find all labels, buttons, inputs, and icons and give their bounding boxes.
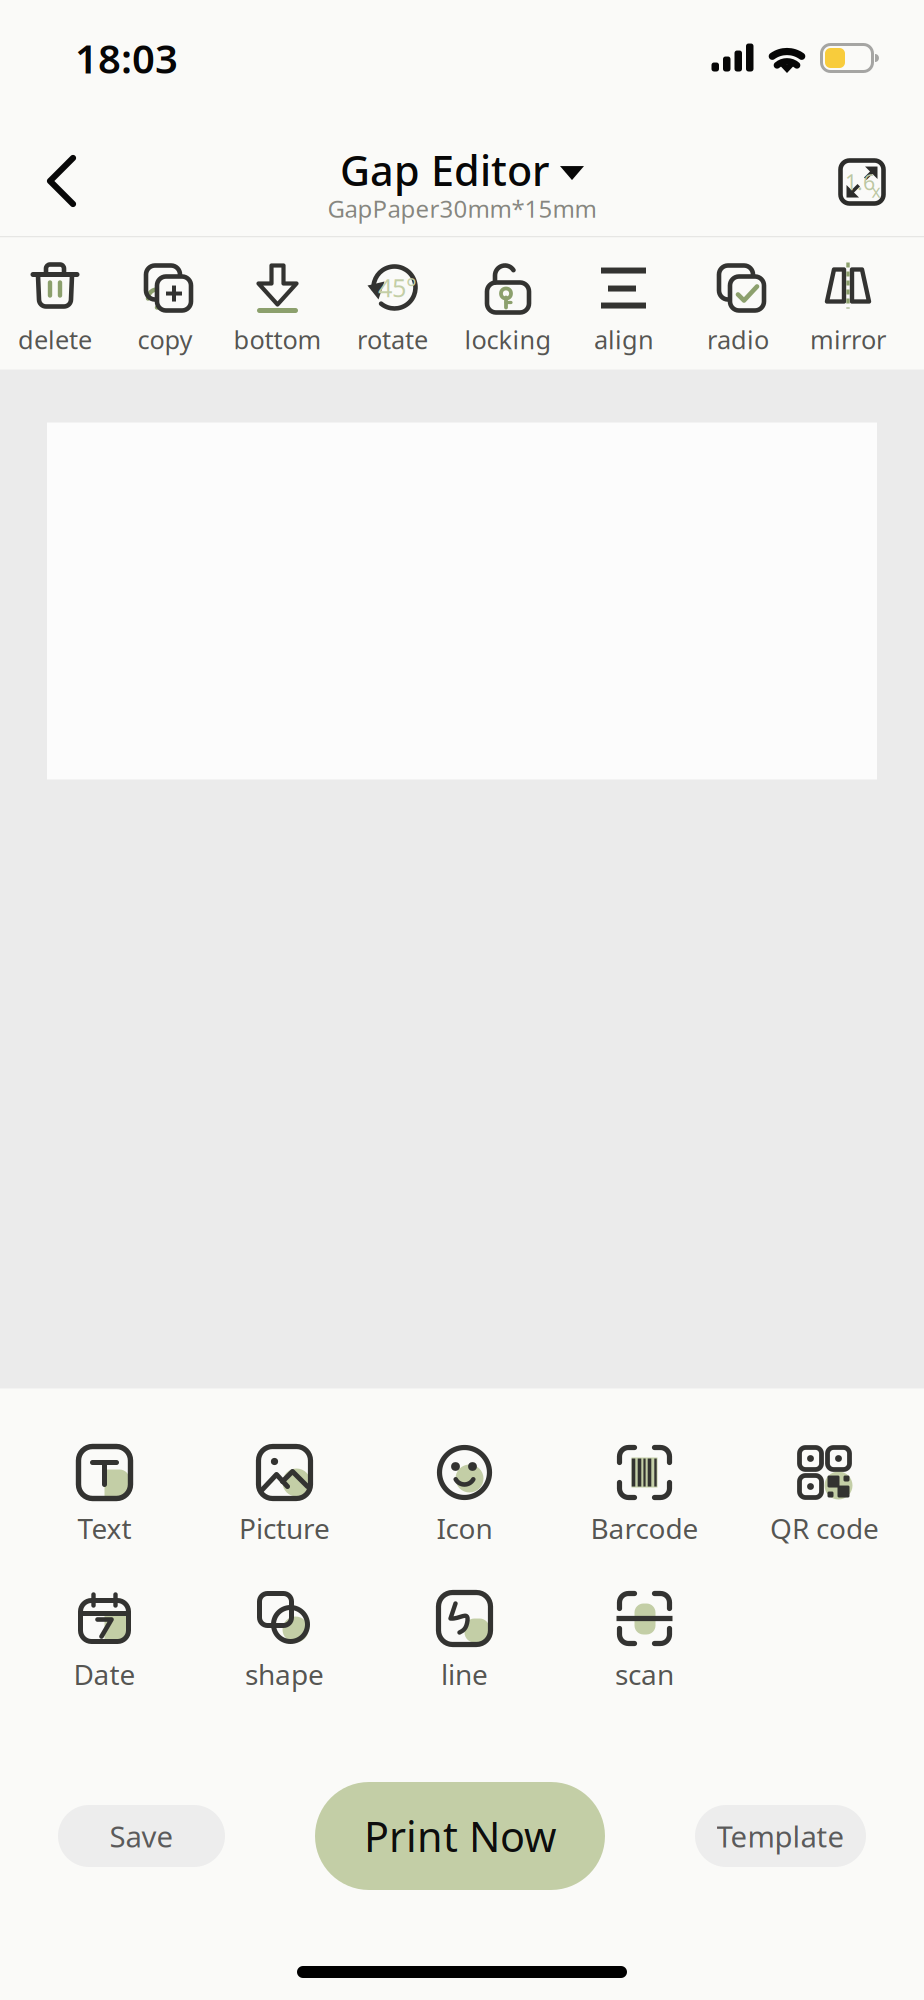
button[interactable]: QR code xyxy=(734,1434,914,1580)
staticText: mirror xyxy=(810,322,886,356)
staticText: copy xyxy=(137,322,192,356)
staticText: Picture xyxy=(239,1509,330,1547)
button[interactable]: Text xyxy=(14,1434,194,1580)
staticText: radio xyxy=(707,322,769,356)
button[interactable]: Zoom level xyxy=(816,127,908,219)
button[interactable]: Print Now xyxy=(315,1782,605,1890)
staticText: x xyxy=(871,179,880,202)
staticText: Text xyxy=(77,1509,131,1547)
staticText: shape xyxy=(245,1655,324,1693)
staticText: Template xyxy=(716,1816,844,1855)
staticText: align xyxy=(594,322,654,356)
staticText: locking xyxy=(464,322,551,356)
button[interactable]: Barcode xyxy=(554,1434,734,1580)
staticText: GapPaper30mm*15mm xyxy=(327,192,596,224)
button[interactable]: 45° xyxy=(335,237,450,369)
button[interactable]: Template xyxy=(695,1805,866,1867)
staticText: Icon xyxy=(436,1509,492,1547)
button[interactable]: Date xyxy=(14,1580,194,1726)
button[interactable]: Save xyxy=(58,1805,225,1867)
button[interactable]: bottom xyxy=(220,237,335,369)
button[interactable]: delete xyxy=(0,237,110,369)
button[interactable]: line xyxy=(374,1580,554,1726)
staticText: 18:03 xyxy=(75,31,178,84)
staticText: 45° xyxy=(378,271,417,304)
button[interactable]: Icon xyxy=(374,1434,554,1580)
button[interactable]: Back xyxy=(0,120,112,226)
staticText: 1.6 xyxy=(845,168,875,196)
button[interactable]: mirror xyxy=(794,237,902,369)
staticText: delete xyxy=(18,322,92,356)
button[interactable]: radio xyxy=(682,237,794,369)
staticText: Gap Editor xyxy=(340,143,549,197)
button[interactable]: align xyxy=(566,237,682,369)
staticText: rotate xyxy=(357,322,428,356)
staticText: scan xyxy=(615,1655,674,1693)
button[interactable]: shape xyxy=(194,1580,374,1726)
staticText: Barcode xyxy=(590,1509,698,1547)
button[interactable]: scan xyxy=(554,1580,734,1726)
button[interactable]: Picture xyxy=(194,1434,374,1580)
button[interactable]: locking xyxy=(450,237,566,369)
staticText: Print Now xyxy=(364,1809,556,1863)
button[interactable]: copy xyxy=(110,237,220,369)
staticText: Save xyxy=(109,1816,173,1855)
staticText: Date xyxy=(73,1655,135,1693)
staticText: bottom xyxy=(233,322,321,356)
staticText: QR code xyxy=(770,1509,879,1547)
staticText: line xyxy=(441,1655,488,1693)
